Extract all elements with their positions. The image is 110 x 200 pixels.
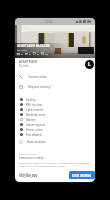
staticText: $50,000,000	[19, 174, 38, 178]
button[interactable]: Seller profile	[85, 60, 94, 69]
staticText: Wardrobe w/set	[26, 113, 46, 117]
staticText: 10:32	[45, 20, 53, 24]
button[interactable]: BOOK VIEWING	[69, 171, 95, 179]
staticText: Pets allowed	[26, 133, 42, 137]
staticText: By Lofta	[19, 64, 29, 68]
staticText: Request viewing	[28, 85, 51, 89]
staticText: 4	[37, 52, 39, 55]
staticText: APARTMENT	[19, 60, 38, 64]
staticText: BOOK VIEWING	[72, 174, 92, 177]
staticText: Fitness center	[26, 128, 43, 132]
staticText: Welcome to HEARTLAND GARDEN, a modern pa…	[19, 161, 95, 167]
staticText: 2	[29, 52, 31, 55]
staticText: Parking	[26, 98, 36, 102]
staticText: KW/ city view	[26, 103, 42, 107]
staticText: Cable internet	[26, 108, 44, 112]
staticText: HEARTLAND GARDENS	[17, 44, 50, 48]
staticText: 3	[21, 52, 23, 55]
staticText: L	[88, 61, 91, 68]
staticText: Contact seller	[28, 75, 47, 79]
staticText: Immersion is ready !	[19, 156, 45, 160]
staticText: Swimming pool	[26, 123, 45, 127]
staticText: New condition	[27, 140, 46, 144]
button[interactable]: Request viewing	[15, 82, 95, 92]
button[interactable]: Contact seller	[15, 72, 95, 82]
staticText: Elk Lake	[17, 48, 27, 51]
staticText: 96	[45, 52, 48, 55]
staticText: DESCRIPTION	[19, 152, 37, 155]
staticText: For Sale	[19, 171, 28, 174]
staticText: Balcony	[26, 118, 36, 122]
